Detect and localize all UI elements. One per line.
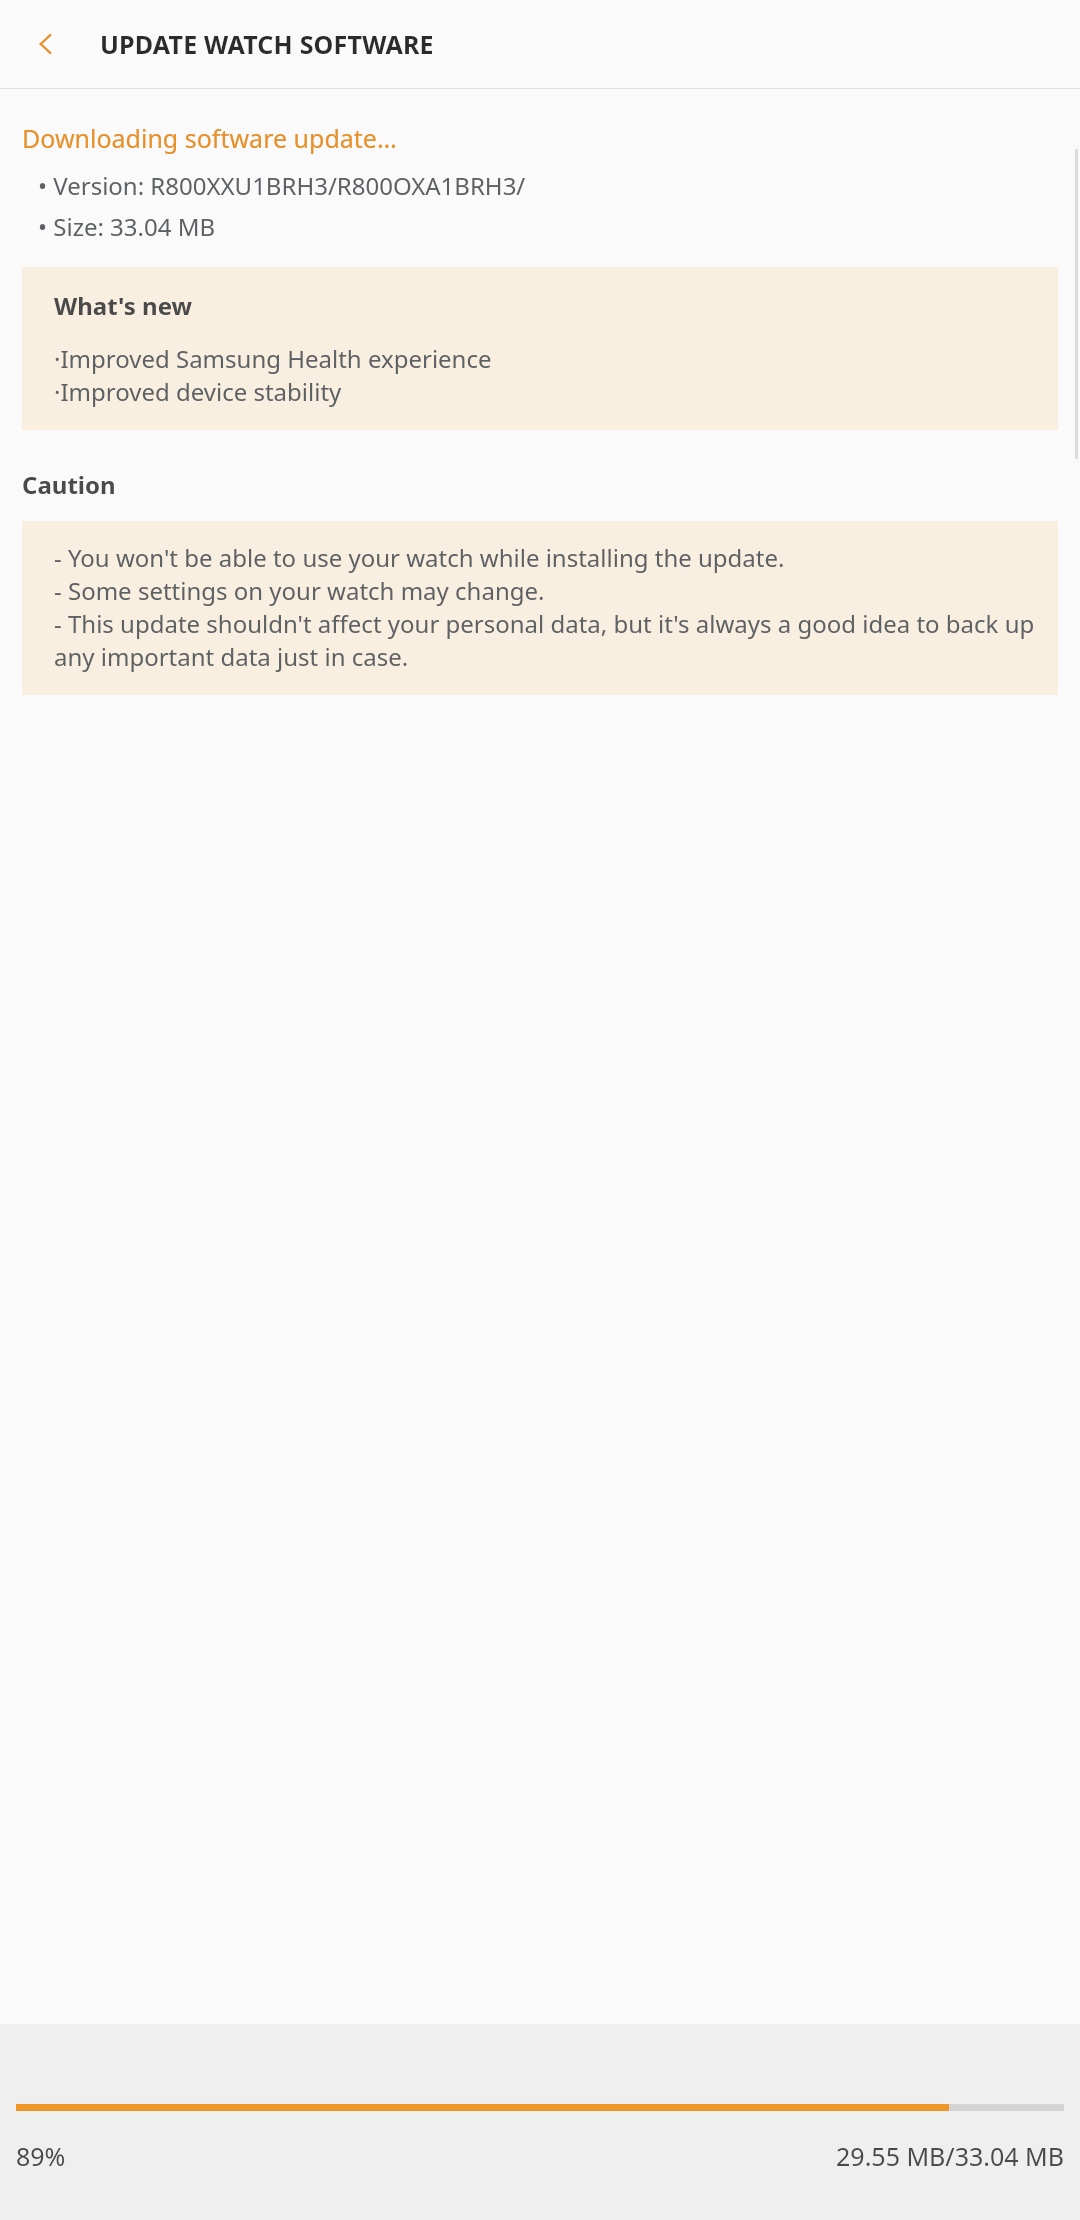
- staticText: What's new: [54, 289, 193, 322]
- staticText: 89%: [16, 2139, 66, 2173]
- staticText: UPDATE WATCH SOFTWARE: [100, 27, 434, 61]
- staticText: - You won't be able to use your watch wh…: [54, 541, 1038, 673]
- staticText: Caution: [22, 468, 116, 501]
- staticText: ·Improved Samsung Health experience ·Imp…: [54, 342, 492, 408]
- staticText: • Size: 33.04 MB: [38, 210, 216, 243]
- staticText: Downloading software update…: [22, 121, 397, 155]
- staticText: • Version: R800XXU1BRH3/R800OXA1BRH3/: [38, 169, 526, 202]
- staticText: 29.55 MB/33.04 MB: [836, 2139, 1064, 2173]
- button[interactable]: Navigate up: [18, 16, 74, 72]
